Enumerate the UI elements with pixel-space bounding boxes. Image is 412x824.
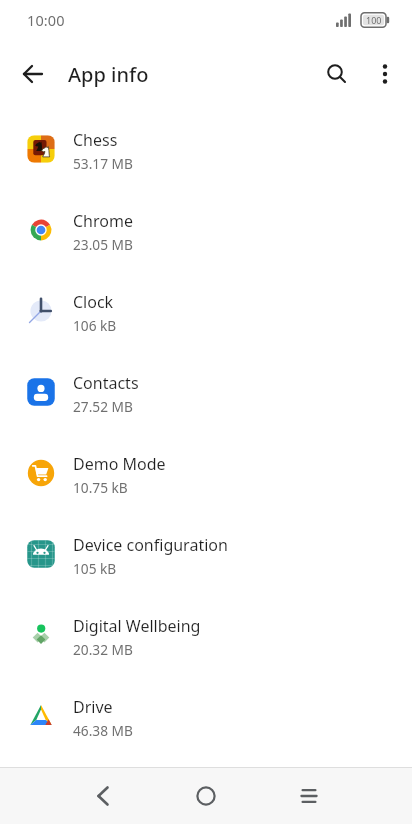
staticText: 46.38 MB (73, 721, 133, 740)
button[interactable] (313, 50, 361, 98)
button[interactable]: Device configuration (0, 513, 412, 594)
button[interactable]: Clock (0, 270, 412, 351)
staticText: 10:00 (27, 10, 65, 30)
staticText: Device configuration (73, 534, 228, 556)
button[interactable]: Contacts (0, 351, 412, 432)
button[interactable] (285, 772, 333, 820)
staticText: Contacts (73, 372, 139, 394)
staticText: 23.05 MB (73, 235, 133, 254)
button[interactable] (361, 50, 409, 98)
button[interactable] (9, 50, 57, 98)
staticText: Chrome (73, 210, 133, 232)
staticText: Clock (73, 291, 114, 313)
staticText: 20.32 MB (73, 640, 133, 659)
button[interactable]: Demo Mode (0, 432, 412, 513)
button[interactable]: Digital Wellbeing (0, 594, 412, 675)
button[interactable] (182, 772, 230, 820)
staticText: Chess (73, 129, 118, 151)
staticText: 100 (366, 14, 382, 26)
button[interactable]: Drive (0, 675, 412, 756)
staticText: 27.52 MB (73, 397, 133, 416)
staticText: App info (68, 61, 149, 88)
staticText: 106 kB (73, 316, 117, 335)
staticText: 10.75 kB (73, 478, 128, 497)
staticText: 53.17 MB (73, 154, 133, 173)
button[interactable]: Chess (0, 108, 412, 189)
button[interactable]: Chrome (0, 189, 412, 270)
staticText: 105 kB (73, 559, 117, 578)
button[interactable] (79, 772, 127, 820)
staticText: Digital Wellbeing (73, 615, 201, 637)
staticText: Drive (73, 696, 113, 718)
staticText: Demo Mode (73, 453, 166, 475)
